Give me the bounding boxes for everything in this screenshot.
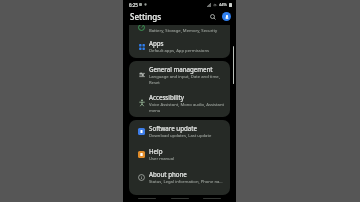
staticText: 6:25 [129, 2, 138, 8]
button[interactable]: Battery, Storage, Memory, Security [129, 25, 230, 35]
button[interactable]: Search [208, 12, 217, 21]
button[interactable]: Accessibility [129, 89, 230, 117]
staticText: Apps [149, 39, 164, 47]
button[interactable]: Software update [129, 120, 230, 143]
staticText: User manual [149, 156, 175, 162]
button[interactable]: Account [222, 12, 231, 21]
staticText: Status, Legal information, Phone name [149, 179, 225, 185]
staticText: Accessibility [149, 93, 184, 101]
button[interactable]: About phone [129, 166, 230, 189]
staticText: Default apps, App permissions [149, 48, 209, 54]
staticText: Software update [149, 124, 197, 132]
staticText: General management [149, 65, 213, 73]
staticText: Voice Assistant, Mono audio, Assistant m… [149, 102, 225, 113]
staticText: About phone [149, 170, 187, 178]
button[interactable]: Developer options [129, 189, 230, 195]
button[interactable]: Apps [129, 35, 230, 58]
staticText: 44% [219, 2, 227, 7]
staticText: Settings [130, 11, 162, 22]
staticText: Download updates, Last update [149, 133, 212, 139]
staticText: Language and input, Date and time, Reset [149, 74, 225, 85]
staticText: Help [149, 147, 163, 155]
button[interactable]: Help [129, 143, 230, 166]
button[interactable]: General management [129, 61, 230, 89]
staticText: Battery, Storage, Memory, Security [149, 28, 218, 34]
